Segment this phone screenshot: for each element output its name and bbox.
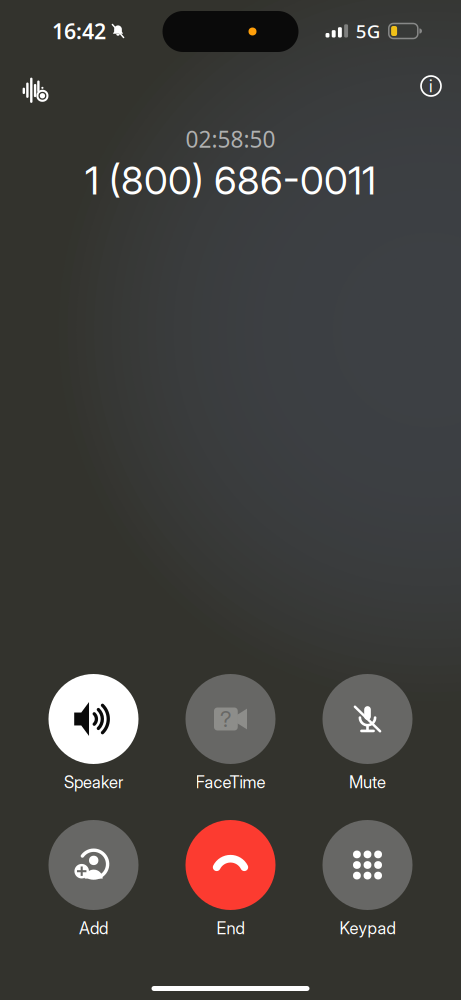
button[interactable]: Add: [25, 820, 162, 942]
staticText: Speaker: [64, 772, 123, 792]
staticText: 02:58:50: [185, 124, 275, 154]
staticText: Mute: [349, 772, 386, 792]
staticText: Keypad: [339, 918, 395, 938]
staticText: ?: [220, 706, 232, 732]
button[interactable]: Call info: [409, 68, 453, 112]
button[interactable]: Mute: [299, 674, 436, 796]
staticText: 16:42: [52, 17, 106, 45]
staticText: Add: [79, 918, 108, 938]
staticText: 1 (800) 686-0011: [85, 157, 376, 204]
staticText: FaceTime: [195, 772, 265, 792]
staticText: 5G: [356, 19, 381, 43]
button[interactable]: End: [162, 820, 299, 942]
staticText: i: [429, 75, 433, 96]
staticText: End: [216, 918, 244, 938]
button[interactable]: Keypad: [299, 820, 436, 942]
button[interactable]: ?: [162, 674, 299, 796]
button[interactable]: Call recording: [14, 68, 58, 112]
button[interactable]: Speaker: [25, 674, 162, 796]
